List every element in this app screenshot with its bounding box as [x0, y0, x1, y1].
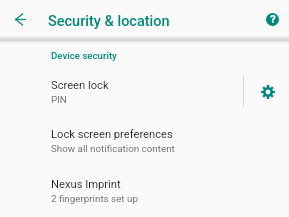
staticText: Device security	[51, 50, 117, 61]
button[interactable]: Screen lock settings	[245, 67, 289, 116]
button[interactable]: Navigate up	[1, 0, 39, 38]
staticText: ?	[270, 13, 276, 26]
staticText: Show all notification content	[51, 143, 175, 154]
staticText: 2 fingerprints set up	[51, 193, 138, 204]
button[interactable]: Help and feedback	[253, 0, 289, 38]
staticText: Security & location	[48, 13, 170, 30]
button[interactable]: Lock screen preferences	[0, 116, 289, 165]
staticText: PIN	[51, 94, 67, 105]
staticText: Screen lock	[51, 79, 109, 92]
staticText: Nexus Imprint	[51, 178, 121, 191]
button[interactable]: Screen lock	[0, 67, 289, 116]
button[interactable]: Nexus Imprint	[0, 166, 289, 215]
staticText: Lock screen preferences	[51, 128, 173, 141]
